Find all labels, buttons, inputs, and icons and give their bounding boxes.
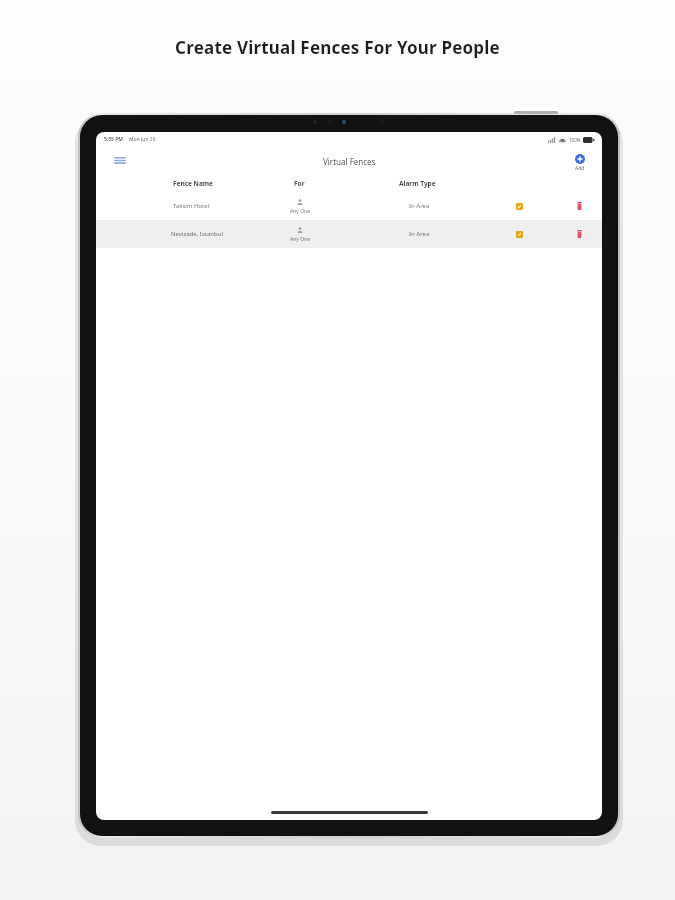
- staticText: Fence Name: [173, 179, 213, 188]
- staticText: Create Virtual Fences For Your People: [175, 36, 500, 59]
- staticText: In Area: [409, 202, 430, 210]
- staticText: Any One: [290, 236, 310, 243]
- button[interactable]: Taksim Hotel: [96, 192, 602, 220]
- staticText: 100%: [569, 137, 581, 143]
- staticText: Virtual Fences: [323, 156, 376, 167]
- staticText: 5:55 PM: [104, 136, 123, 143]
- staticText: In Area: [409, 230, 430, 238]
- staticText: Alarm Type: [399, 179, 436, 188]
- button[interactable]: Menu: [110, 151, 130, 171]
- staticText: Nevizade, Istanbul: [171, 230, 223, 238]
- staticText: Add: [575, 165, 585, 172]
- staticText: Any One: [290, 208, 310, 215]
- button[interactable]: Edit fence: [513, 228, 525, 240]
- button[interactable]: Nevizade, Istanbul: [96, 220, 602, 248]
- button[interactable]: Edit fence: [513, 200, 525, 212]
- staticText: Taksim Hotel: [173, 202, 210, 210]
- staticText: Mon Jun 10: [129, 136, 156, 143]
- staticText: For: [294, 179, 305, 188]
- button[interactable]: Add: [572, 154, 588, 172]
- button[interactable]: Delete fence: [573, 228, 585, 240]
- button[interactable]: Delete fence: [573, 200, 585, 212]
